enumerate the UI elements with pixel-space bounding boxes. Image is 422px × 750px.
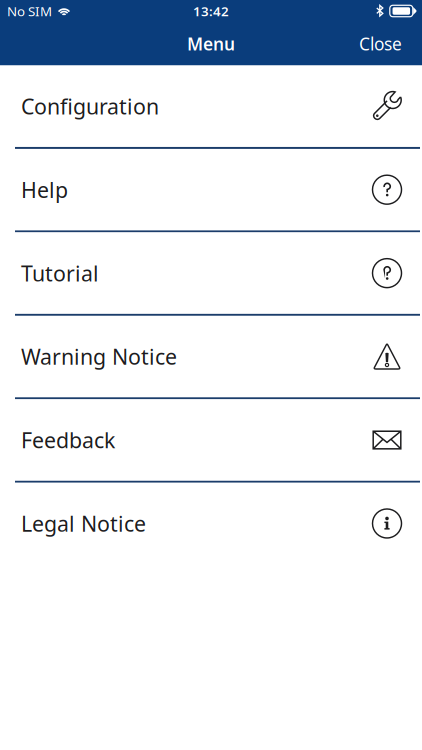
staticText: Close — [359, 32, 402, 55]
staticText: No SIM — [7, 2, 52, 20]
staticText: Configuration — [21, 92, 159, 120]
button[interactable]: Tutorial — [0, 232, 422, 314]
staticText: Help — [21, 175, 68, 204]
button[interactable]: Close — [339, 23, 422, 64]
staticText: Feedback — [21, 426, 115, 454]
button[interactable]: Configuration — [0, 65, 422, 147]
staticText: Legal Notice — [21, 509, 146, 538]
staticText: Warning Notice — [21, 342, 177, 371]
staticText: 13:42 — [193, 2, 229, 20]
staticText: Tutorial — [21, 259, 99, 287]
button[interactable]: Help — [0, 149, 422, 230]
button[interactable]: Legal Notice — [0, 483, 422, 564]
button[interactable]: Warning Notice — [0, 316, 422, 397]
button[interactable]: Feedback — [0, 399, 422, 481]
staticText: Menu — [187, 32, 235, 55]
